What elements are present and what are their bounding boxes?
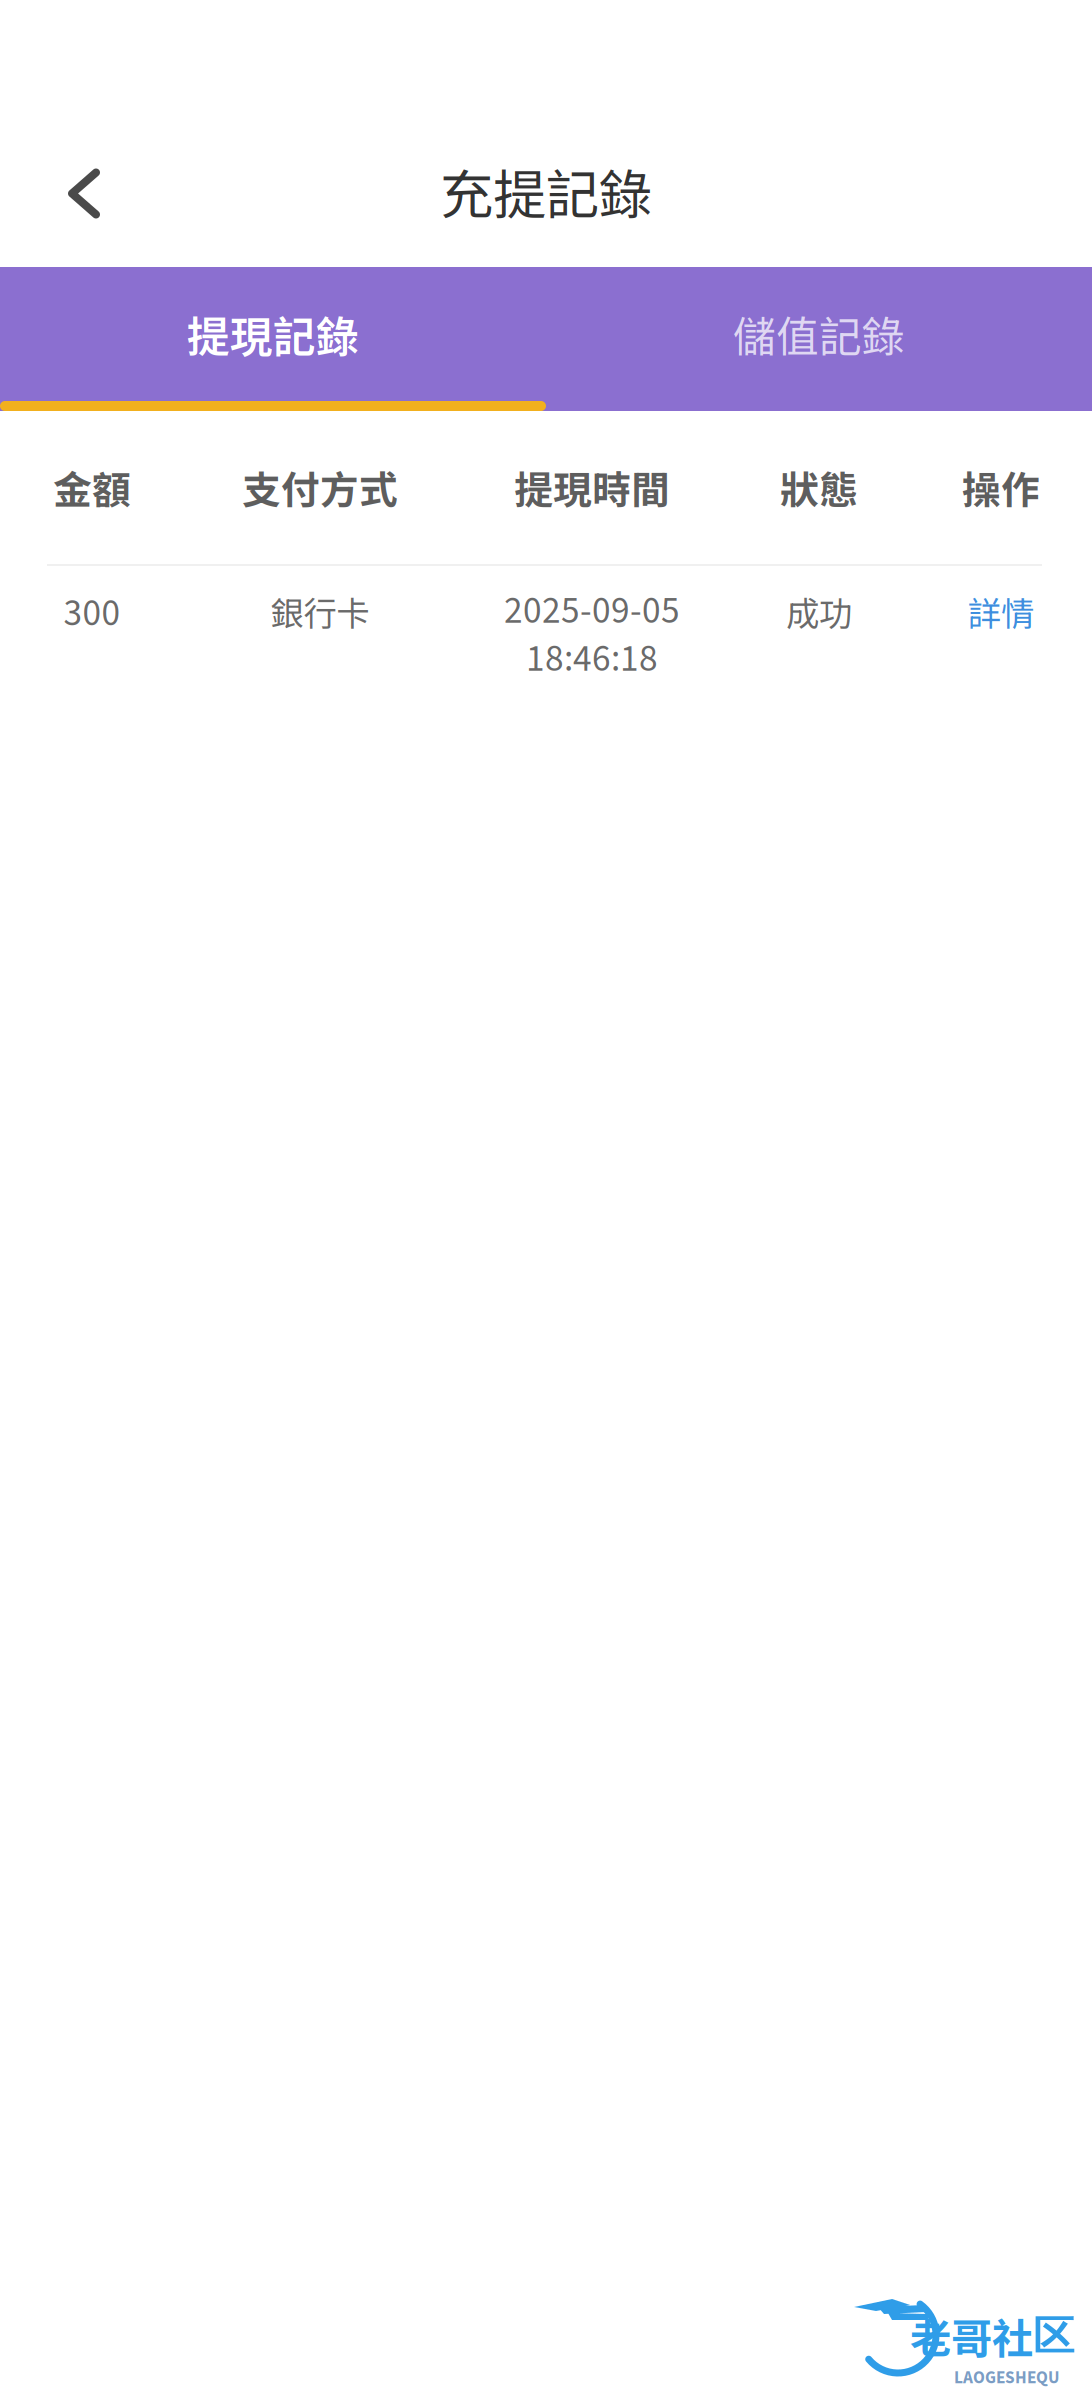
button[interactable]: 詳情 [910,587,1092,635]
staticText: 儲值記錄 [733,303,905,365]
button[interactable]: 提現記錄 [0,267,546,401]
staticText: 操作 [962,459,1040,515]
staticText: 300 [63,587,120,640]
staticText: 支付方式 [242,459,398,515]
button[interactable]: 儲值記錄 [546,267,1092,401]
staticText: LAOGESHEQU [954,2366,1060,2390]
staticText: 老哥社区 [910,2306,1074,2366]
staticText: 金額 [53,459,131,515]
staticText: 成功 [786,587,852,635]
staticText: 18:46:18 [526,632,658,686]
staticText: 充提記錄 [440,152,652,230]
staticText: 2025-09-05 [504,584,680,638]
staticText: 詳情 [968,587,1034,635]
staticText: 銀行卡 [270,587,369,635]
staticText: 提現時間 [514,459,670,515]
button[interactable]: Back [36,143,132,239]
staticText: 狀態 [780,459,858,515]
staticText: 提現記錄 [187,303,359,365]
